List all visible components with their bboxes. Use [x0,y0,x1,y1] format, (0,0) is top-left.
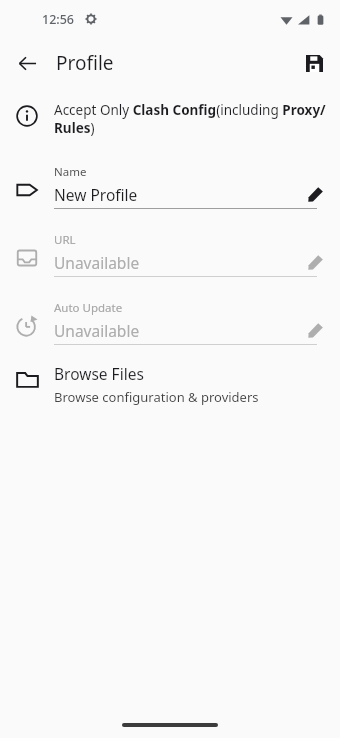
button[interactable]: Auto Update [0,286,340,354]
button[interactable]: Edit URL [304,251,326,273]
staticText: Browse Files [54,363,144,384]
staticText: Accept Only Clash Config(including Proxy… [54,101,326,137]
button[interactable]: Back [9,45,45,81]
staticText: 12:56 [42,11,75,28]
staticText: Unavailable [54,252,304,273]
button[interactable]: Edit Name [304,183,326,205]
button[interactable]: Save [296,45,332,81]
staticText: New Profile [54,184,304,205]
button[interactable]: Edit Auto Update [304,319,326,341]
button[interactable]: Name [0,150,340,218]
staticText: Name [54,164,87,180]
staticText: Unavailable [54,320,304,341]
button[interactable]: URL [0,218,340,286]
button[interactable]: Accept Only Clash Config(including Proxy… [0,94,340,150]
staticText: Profile [56,50,114,76]
staticText: Auto Update [54,300,123,316]
button[interactable]: Browse Files [0,354,340,416]
staticText: URL [54,232,76,248]
staticText: Browse configuration & providers [54,388,259,406]
